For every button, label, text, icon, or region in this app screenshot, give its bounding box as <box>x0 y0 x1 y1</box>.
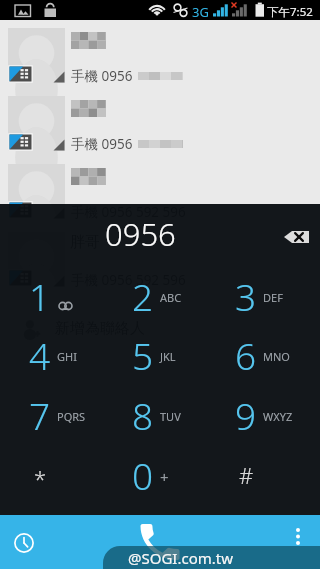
button[interactable] <box>0 386 107 446</box>
staticText: PQRS <box>57 409 86 424</box>
staticText: MNO <box>263 349 290 364</box>
staticText: 4 <box>29 330 51 380</box>
staticText: 7 <box>29 390 51 440</box>
button[interactable]: 胖哥 <box>0 226 320 294</box>
button[interactable]: Call <box>133 516 187 568</box>
button[interactable]: More options <box>283 521 313 551</box>
staticText: 8 <box>132 390 154 440</box>
staticText: 2 <box>132 271 154 321</box>
staticText: 6 <box>235 330 257 380</box>
staticText: 3G <box>192 3 209 21</box>
button[interactable] <box>107 446 214 506</box>
staticText: * <box>34 463 47 493</box>
button[interactable]: 手機 0956 <box>0 90 320 158</box>
staticText: 9 <box>235 390 257 440</box>
button[interactable]: Backspace <box>278 220 314 254</box>
staticText: 下午7:52 <box>267 4 313 20</box>
staticText: 手機 0956 592 596 <box>71 271 186 289</box>
staticText: @SOGI.com.tw <box>128 548 233 568</box>
staticText: DEF <box>263 290 283 305</box>
button[interactable] <box>0 446 107 506</box>
staticText: GHI <box>57 349 77 364</box>
staticText: # <box>239 460 254 490</box>
button[interactable] <box>0 267 107 327</box>
staticText: 1 <box>29 271 51 321</box>
button[interactable]: 手機 0956 592 596 <box>0 158 320 226</box>
staticText: 0 <box>132 450 154 500</box>
button[interactable] <box>107 386 214 446</box>
staticText: 3 <box>235 271 257 321</box>
button[interactable] <box>213 326 320 386</box>
staticText: 手機 0956 <box>71 135 133 153</box>
button[interactable]: 新增為聯絡人 <box>0 294 320 362</box>
staticText: 手機 0956 592 596 <box>71 203 186 221</box>
button[interactable]: Call history <box>7 526 41 560</box>
staticText: ABC <box>160 290 182 305</box>
staticText: 手機 0956 <box>71 67 133 85</box>
staticText: TUV <box>160 409 181 424</box>
button[interactable] <box>107 326 214 386</box>
staticText: WXYZ <box>263 409 293 424</box>
staticText: JKL <box>160 349 176 364</box>
staticText: 0956 <box>105 213 176 255</box>
staticText: 5 <box>132 330 154 380</box>
button[interactable] <box>213 446 320 506</box>
button[interactable] <box>213 386 320 446</box>
button[interactable] <box>213 267 320 327</box>
button[interactable] <box>0 326 107 386</box>
button[interactable]: 手機 0956 <box>0 22 320 90</box>
staticText: + <box>160 467 169 487</box>
button[interactable] <box>107 267 214 327</box>
